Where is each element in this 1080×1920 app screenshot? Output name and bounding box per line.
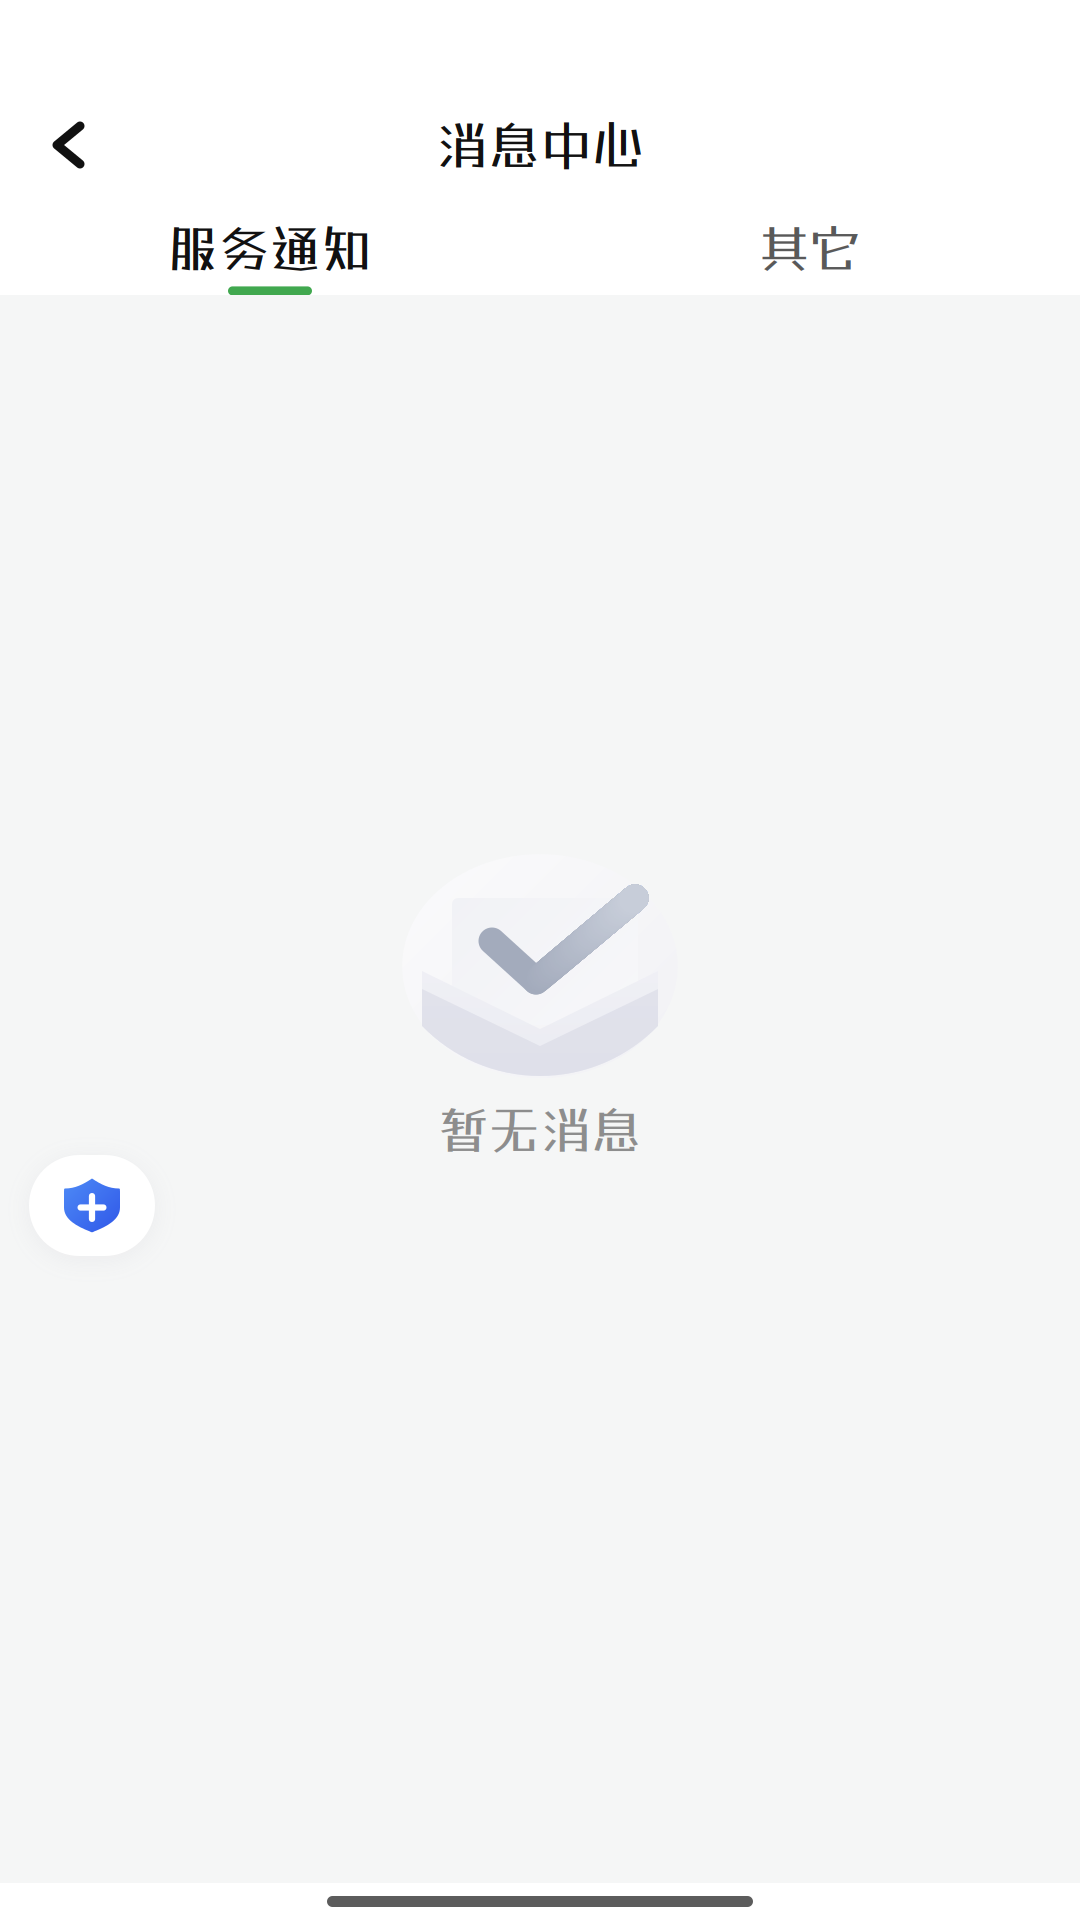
staticText: 消息中心 bbox=[436, 114, 644, 176]
staticText: 暂无消息 bbox=[438, 1100, 642, 1160]
staticText: 服务通知 bbox=[168, 219, 372, 278]
button[interactable]: 服务通知 bbox=[0, 190, 540, 295]
button[interactable]: 返回 bbox=[26, 100, 112, 190]
button[interactable]: 安全中心 bbox=[29, 1155, 155, 1256]
button[interactable]: 其它 bbox=[540, 190, 1080, 295]
staticText: 其它 bbox=[759, 219, 861, 278]
